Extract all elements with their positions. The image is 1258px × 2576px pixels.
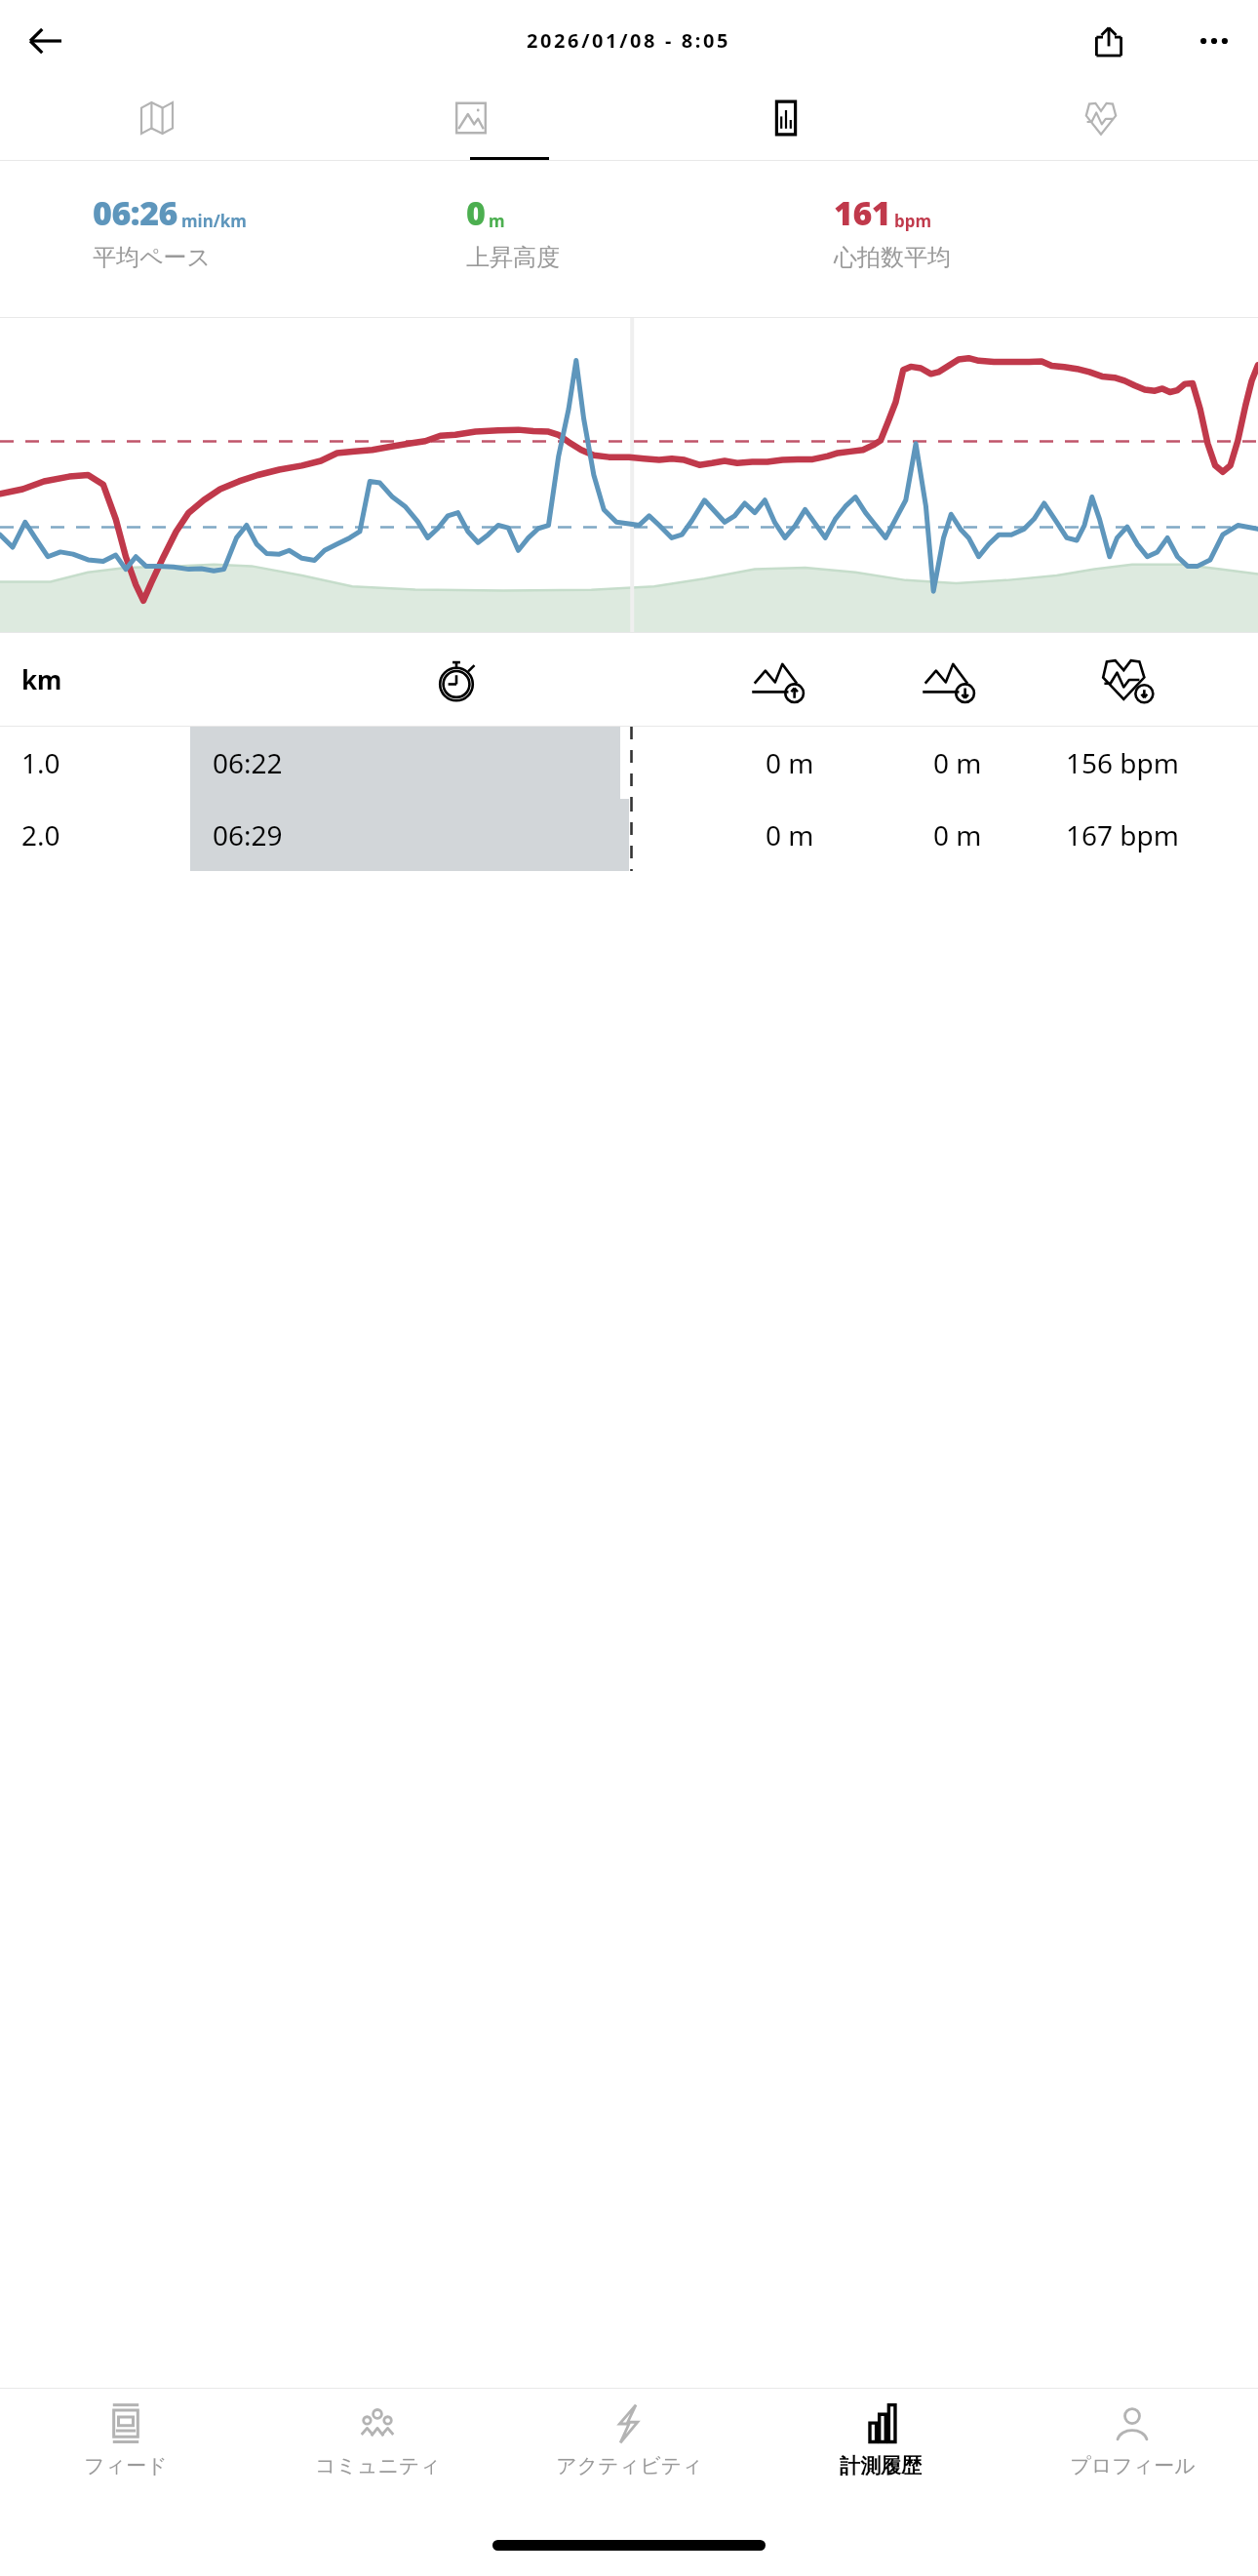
staticText: 161 — [834, 190, 891, 235]
staticText: min/km — [181, 210, 247, 232]
staticText: プロフィール — [1070, 2453, 1196, 2478]
button[interactable]: More options — [1188, 15, 1240, 67]
button[interactable]: Share — [1082, 15, 1135, 67]
staticText: 2026/01/08 - 8:05 — [527, 27, 731, 54]
button[interactable]: Photos — [314, 82, 628, 160]
staticText: 06:22 — [213, 744, 283, 781]
staticText: 06:29 — [213, 816, 283, 853]
button[interactable]: フィード — [0, 2389, 252, 2525]
staticText: bpm — [894, 210, 932, 232]
staticText: アクティビティ — [556, 2453, 703, 2478]
button[interactable]: 1.0 — [0, 727, 1258, 799]
staticText: 06:26 — [93, 190, 178, 235]
staticText: 0 m — [933, 816, 982, 853]
staticText: 156 bpm — [1066, 744, 1179, 781]
staticText: 計測履歴 — [840, 2453, 922, 2478]
staticText: 0 — [466, 190, 486, 235]
staticText: m — [489, 210, 505, 232]
button[interactable]: コミュニティ — [252, 2389, 503, 2525]
staticText: 平均ペース — [93, 243, 212, 272]
staticText: 上昇高度 — [466, 243, 560, 272]
button[interactable]: アクティビティ — [503, 2389, 755, 2525]
button[interactable]: Heart rate — [943, 82, 1258, 160]
staticText: 0 m — [766, 744, 814, 781]
button[interactable]: 計測履歴 — [755, 2389, 1006, 2525]
button[interactable]: Charts — [628, 82, 943, 160]
staticText: フィード — [84, 2453, 168, 2478]
staticText: 心拍数平均 — [834, 243, 951, 272]
button[interactable]: プロフィール — [1006, 2389, 1258, 2525]
staticText: 0 m — [933, 744, 982, 781]
staticText: 0 m — [766, 816, 814, 853]
button[interactable]: Map — [0, 82, 314, 160]
staticText: 2.0 — [21, 816, 60, 853]
staticText: 167 bpm — [1066, 816, 1179, 853]
button[interactable]: Back — [18, 14, 72, 68]
button[interactable]: 2.0 — [0, 799, 1258, 871]
staticText: km — [21, 662, 62, 696]
staticText: 1.0 — [21, 744, 60, 781]
staticText: コミュニティ — [315, 2453, 441, 2478]
